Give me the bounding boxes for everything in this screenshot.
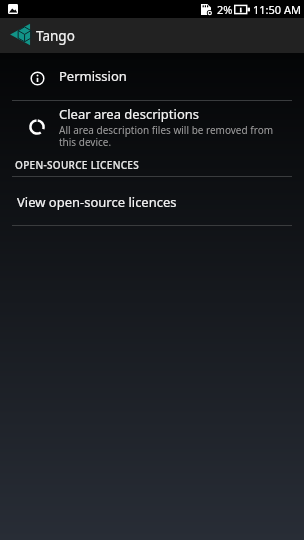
staticText: OPEN-SOURCE LICENCES (15, 158, 140, 172)
button[interactable]: Clear area descriptions (0, 100, 304, 153)
staticText: View open-source licences (17, 193, 177, 211)
staticText: 2% (217, 2, 233, 17)
staticText: 11:50 AM (253, 2, 301, 17)
staticText: Permission (59, 67, 127, 85)
button[interactable]: Permission (0, 58, 304, 99)
staticText: Clear area descriptions (59, 105, 200, 123)
staticText: All area description files will be remov… (59, 123, 277, 149)
button[interactable]: Tango (10, 23, 31, 46)
button[interactable]: View open-source licences (0, 177, 304, 225)
staticText: Tango (36, 27, 75, 45)
